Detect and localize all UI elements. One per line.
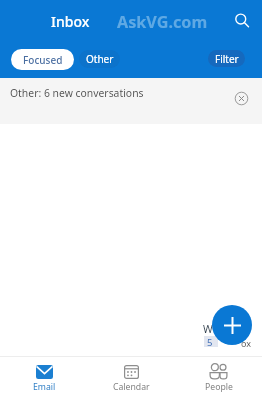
- button[interactable]: People: [175, 357, 262, 400]
- button[interactable]: Filter: [208, 50, 245, 67]
- button[interactable]: Other: [79, 50, 120, 68]
- staticText: Email: [33, 381, 56, 393]
- button[interactable]: Search: [229, 8, 253, 32]
- staticText: Other: 6 new conversations: [10, 86, 144, 100]
- button[interactable]: Dismiss: [234, 91, 249, 106]
- staticText: AskVG.com: [117, 11, 208, 33]
- staticText: Other: [86, 52, 114, 66]
- staticText: Inbox: [51, 12, 90, 31]
- staticText: Focused: [23, 53, 63, 67]
- staticText: Calendar: [113, 381, 150, 393]
- button[interactable]: Compose new mail: [212, 305, 252, 345]
- staticText: W: [203, 322, 213, 336]
- button[interactable]: Other: 6 new conversations: [0, 78, 262, 124]
- staticText: ox: [241, 337, 252, 349]
- button[interactable]: Focused: [11, 49, 74, 70]
- staticText: Filter: [215, 52, 239, 66]
- button[interactable]: Email: [0, 357, 88, 400]
- staticText: People: [205, 381, 233, 393]
- button[interactable]: Calendar: [88, 357, 175, 400]
- staticText: 5: [207, 336, 213, 349]
